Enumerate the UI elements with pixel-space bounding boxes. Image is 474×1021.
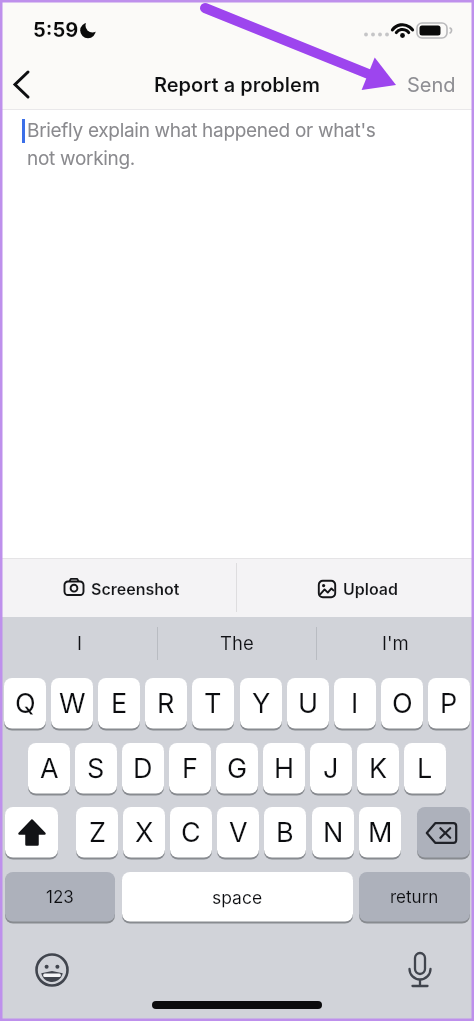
button[interactable]	[398, 946, 442, 990]
staticText: N	[323, 816, 344, 849]
button[interactable]: O	[381, 678, 423, 729]
button[interactable]: Screenshot	[62, 567, 182, 609]
staticText: Report a problem	[154, 73, 320, 97]
button[interactable]: I	[334, 678, 376, 729]
button[interactable]: L	[404, 743, 446, 794]
button[interactable]: U	[287, 678, 329, 729]
staticText: A	[40, 752, 59, 785]
staticText: D	[133, 752, 153, 785]
button[interactable]: F	[169, 743, 211, 794]
staticText: Briefly explain what happened or what's …	[27, 119, 376, 169]
button[interactable]: C	[170, 807, 212, 858]
button[interactable]: Q	[4, 678, 46, 729]
button[interactable]: X	[123, 807, 165, 858]
staticText: P	[440, 687, 458, 720]
staticText: M	[368, 816, 393, 849]
button[interactable]: Send	[398, 66, 464, 104]
staticText: T	[204, 687, 222, 720]
staticText: W	[59, 687, 86, 720]
staticText: I	[77, 632, 82, 654]
staticText: Y	[252, 687, 271, 720]
staticText: S	[87, 752, 105, 785]
staticText: Q	[15, 687, 36, 720]
staticText: Upload	[343, 579, 399, 598]
staticText: 5:59	[33, 18, 79, 42]
button[interactable]: I	[0, 622, 158, 664]
staticText: U	[298, 687, 319, 720]
button[interactable]: T	[192, 678, 234, 729]
button[interactable]: A	[28, 743, 70, 794]
button[interactable]	[4, 63, 46, 105]
button[interactable]: W	[51, 678, 93, 729]
staticText: F	[182, 752, 198, 785]
button[interactable]: N	[312, 807, 354, 858]
staticText: I'm	[382, 632, 409, 654]
staticText: B	[276, 816, 294, 849]
button[interactable]: V	[217, 807, 259, 858]
staticText: space	[212, 887, 263, 908]
button[interactable]: G	[216, 743, 258, 794]
staticText: 123	[46, 887, 74, 908]
button[interactable]: M	[359, 807, 401, 858]
staticText: O	[392, 687, 413, 720]
staticText: C	[181, 816, 201, 849]
button[interactable]: space	[122, 872, 353, 922]
button[interactable]: B	[264, 807, 306, 858]
button[interactable]: Y	[240, 678, 282, 729]
button[interactable]: 123	[5, 872, 115, 922]
staticText: X	[135, 816, 154, 849]
staticText: R	[157, 687, 175, 720]
staticText: E	[111, 687, 128, 720]
button[interactable]: D	[122, 743, 164, 794]
staticText: G	[227, 752, 248, 785]
button[interactable]: I'm	[316, 622, 474, 664]
button[interactable]: S	[75, 743, 117, 794]
staticText: Z	[89, 816, 106, 849]
staticText: return	[390, 887, 439, 908]
staticText: K	[369, 752, 388, 785]
staticText: V	[229, 816, 248, 849]
staticText: H	[274, 752, 295, 785]
button[interactable]: R	[145, 678, 187, 729]
button[interactable]: Z	[76, 807, 118, 858]
staticText: L	[417, 752, 433, 785]
button[interactable]: J	[310, 743, 352, 794]
button[interactable]: The	[158, 622, 316, 664]
button[interactable]: K	[357, 743, 399, 794]
staticText: J	[323, 752, 339, 785]
button[interactable]	[30, 946, 74, 990]
button[interactable]: P	[428, 678, 470, 729]
button[interactable]	[417, 807, 470, 858]
staticText: I	[351, 687, 359, 720]
button[interactable]: E	[98, 678, 140, 729]
button[interactable]: Upload	[298, 567, 418, 609]
button[interactable]: return	[359, 872, 470, 922]
button[interactable]	[5, 807, 58, 858]
staticText: Screenshot	[91, 579, 180, 598]
staticText: Send	[407, 73, 456, 97]
button[interactable]: H	[263, 743, 305, 794]
staticText: The	[220, 632, 254, 654]
